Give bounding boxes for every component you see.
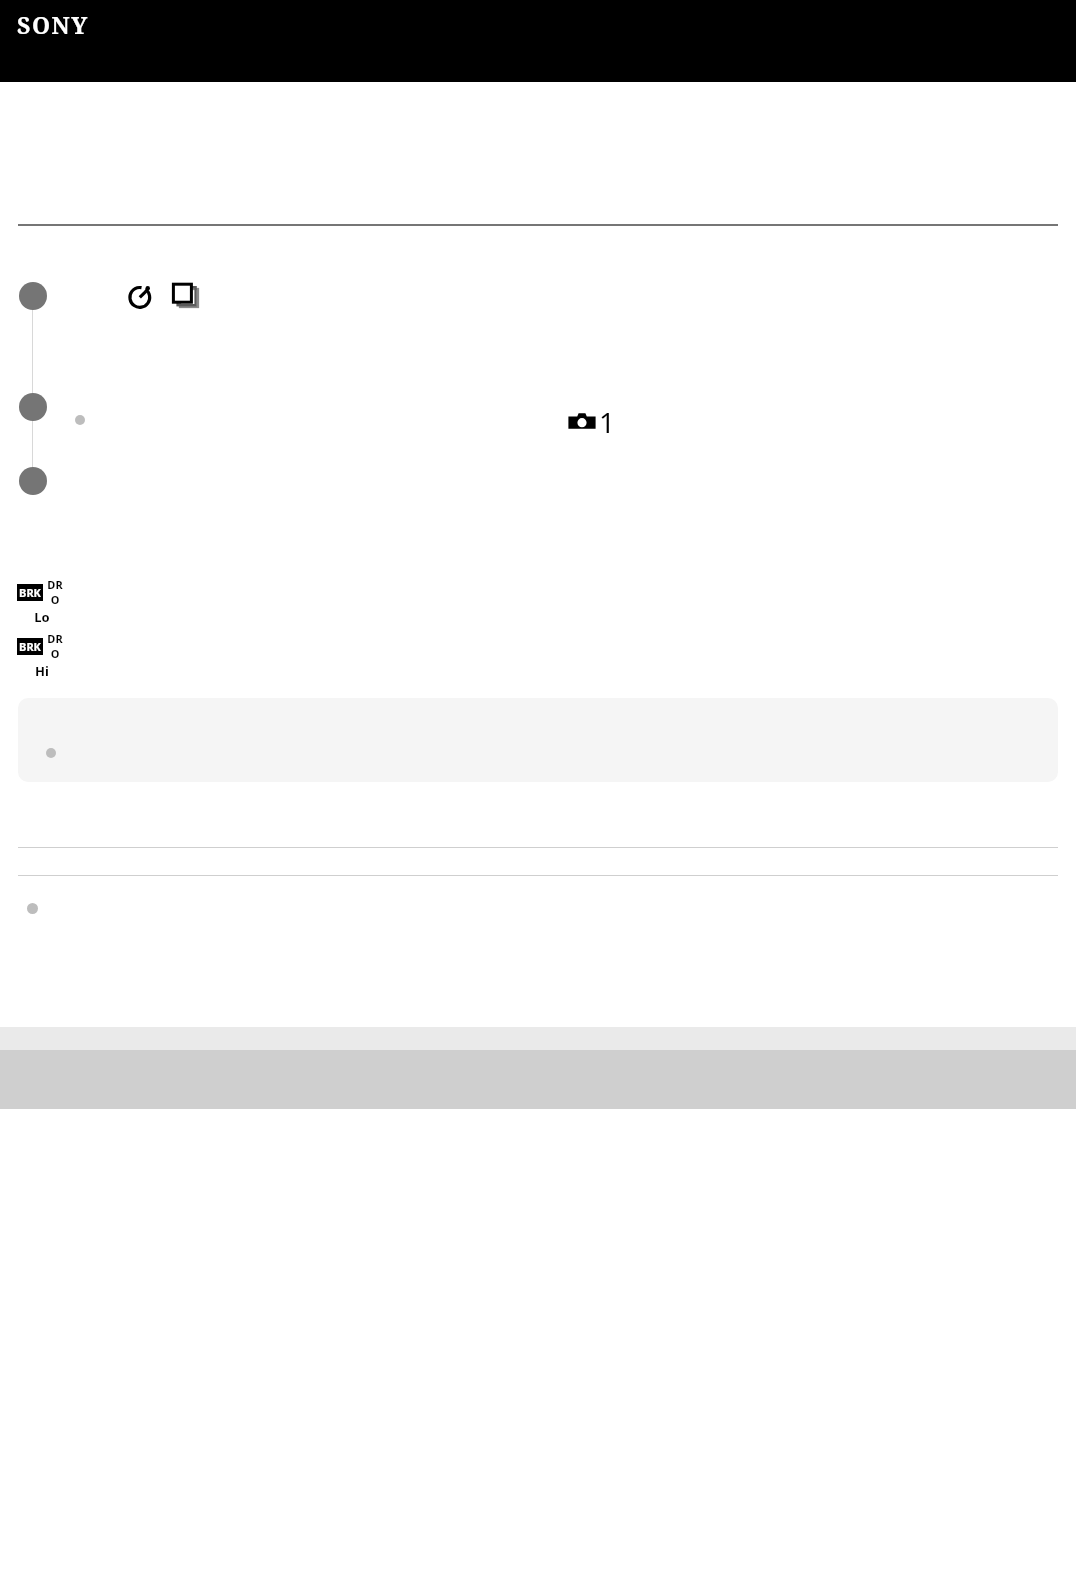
button[interactable]: Camera bbox=[565, 403, 616, 441]
button[interactable]: Step bbox=[19, 282, 47, 310]
button[interactable]: Step bbox=[19, 467, 47, 495]
button[interactable]: Self-timer bbox=[126, 280, 201, 310]
staticText: Lo bbox=[34, 608, 50, 626]
staticText: DRO bbox=[44, 577, 66, 607]
other: Camera bbox=[565, 405, 599, 439]
other: Self-timer bbox=[126, 280, 156, 310]
button[interactable]: BRK bbox=[17, 630, 67, 680]
button[interactable]: Step bbox=[19, 393, 47, 421]
button[interactable]: SONY bbox=[0, 0, 1076, 82]
button[interactable]: BRK bbox=[17, 576, 67, 626]
staticText: BRK bbox=[19, 585, 41, 600]
staticText: BRK bbox=[19, 639, 41, 654]
other: Continuous shooting bbox=[171, 280, 201, 310]
staticText: SONY bbox=[17, 9, 89, 40]
staticText: 1 bbox=[599, 403, 616, 441]
staticText: DRO bbox=[44, 631, 66, 661]
staticText: Hi bbox=[35, 662, 49, 680]
